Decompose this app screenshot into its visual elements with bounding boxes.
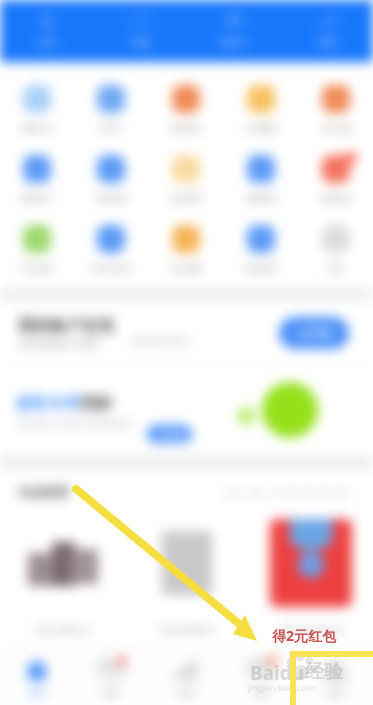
button[interactable]: 信用卡 xyxy=(187,7,280,51)
staticText: 优惠活动 xyxy=(320,193,352,203)
button[interactable]: 我的账户总览 xyxy=(0,301,373,365)
button[interactable]: 网点查询 xyxy=(223,225,298,273)
button[interactable]: 信用卡还款 xyxy=(74,225,148,273)
staticText: 为你推荐 xyxy=(17,484,69,500)
staticText: 首页 xyxy=(37,36,57,49)
button[interactable]: 存款理财 xyxy=(74,155,148,203)
staticText: 更多好礼等你来 xyxy=(280,624,343,635)
button[interactable]: 限时优惠活动 xyxy=(0,504,125,635)
staticText: 登录查看账户明细 xyxy=(18,338,98,351)
staticText: 我的账户 xyxy=(21,193,53,203)
staticText: 经验 xyxy=(305,660,343,684)
button[interactable]: 转账汇款 xyxy=(0,85,74,133)
button[interactable]: 理财 xyxy=(280,7,373,51)
button[interactable]: 基金投资 xyxy=(148,155,223,203)
staticText: 理财 xyxy=(317,36,337,49)
button[interactable]: 保险服务 xyxy=(223,155,298,203)
staticText: 转账 xyxy=(131,36,151,49)
button[interactable]: 我的账户 xyxy=(0,155,74,203)
staticText: Baidu xyxy=(250,660,305,686)
button[interactable]: 理财 xyxy=(148,649,223,705)
button[interactable]: 我的贷款 xyxy=(148,85,223,133)
staticText: 消息 xyxy=(252,687,270,698)
button[interactable]: 生活缴费 xyxy=(223,85,298,133)
button[interactable]: 手机充值 xyxy=(0,225,74,273)
button[interactable]: 我的 xyxy=(298,649,373,705)
button[interactable]: 信用卡 xyxy=(74,85,148,133)
staticText: jingyan.baidu.com xyxy=(248,682,318,693)
staticText: 立即查看 xyxy=(156,430,184,439)
button[interactable]: 去开通 xyxy=(279,317,349,349)
staticText: 我的账户总览 xyxy=(18,316,114,336)
button[interactable]: 更多 xyxy=(298,225,373,273)
staticText: 保险服务 xyxy=(245,193,277,203)
button[interactable]: 更多好礼等你来 xyxy=(249,504,373,635)
button[interactable]: 首页 xyxy=(0,7,94,51)
staticText: 理财 xyxy=(80,394,112,414)
staticText: 去开通 xyxy=(298,326,331,340)
staticText: 新客专享 xyxy=(16,394,80,414)
button[interactable]: 转账 xyxy=(94,7,187,51)
staticText: 得2元红包 xyxy=(272,626,337,645)
button[interactable]: 精选好物推荐 xyxy=(125,504,249,635)
button[interactable]: 手机充值 xyxy=(298,85,373,133)
button[interactable]: 积分商城 xyxy=(148,225,223,273)
button[interactable]: 新客专享 xyxy=(0,366,373,454)
button[interactable]: 首页 xyxy=(0,649,74,705)
button[interactable]: 立即查看 xyxy=(147,425,192,443)
button[interactable]: 消息 xyxy=(223,649,298,705)
button[interactable]: 优惠活动 xyxy=(298,155,373,203)
button[interactable]: 转账 xyxy=(74,649,148,705)
staticText: 信用卡 xyxy=(219,36,249,49)
staticText: 首页 xyxy=(28,687,46,698)
staticText: 生活缴费 xyxy=(245,123,277,133)
